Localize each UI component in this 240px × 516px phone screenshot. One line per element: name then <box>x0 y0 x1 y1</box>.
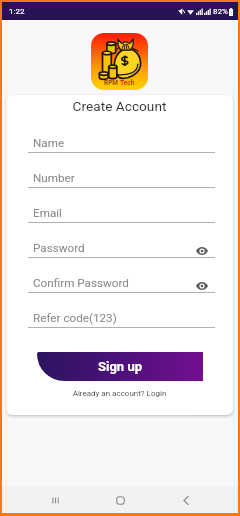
button[interactable]: Back <box>174 489 196 511</box>
button[interactable]: Name <box>28 130 215 153</box>
button[interactable]: Home <box>109 489 131 511</box>
button[interactable]: Number <box>28 165 215 188</box>
button[interactable]: Sign up <box>37 352 203 381</box>
button[interactable]: Already an account? Login <box>6 389 233 398</box>
staticText: Sign up <box>98 359 142 374</box>
staticText: RPM <box>104 79 120 87</box>
staticText: Tech <box>120 79 135 87</box>
staticText: Number <box>33 171 75 185</box>
staticText: Email <box>33 206 62 220</box>
button[interactable]: Recents <box>44 489 66 511</box>
button[interactable]: Confirm Password <box>28 270 215 293</box>
staticText: Confirm Password <box>33 276 129 290</box>
staticText: 1:22 <box>9 7 25 16</box>
staticText: Name <box>33 136 65 150</box>
button[interactable]: Show password <box>195 279 209 293</box>
staticText: 82% <box>213 7 228 16</box>
button[interactable]: Password <box>28 235 215 258</box>
button[interactable]: Email <box>28 200 215 223</box>
staticText: Create Account <box>6 98 233 114</box>
staticText: Refer code(123) <box>33 311 117 325</box>
staticText: Password <box>33 241 85 255</box>
button[interactable]: Refer code(123) <box>28 305 215 328</box>
button[interactable]: Show password <box>195 244 209 258</box>
